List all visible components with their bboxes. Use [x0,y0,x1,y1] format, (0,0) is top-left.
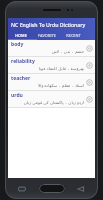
button[interactable]: body [8,40,95,56]
button[interactable]: Recents [18,186,26,192]
button[interactable]: Add reliability to favorites [86,62,93,69]
staticText: urdu [11,92,23,99]
button[interactable]: HOME [8,30,34,40]
button[interactable]: reliability [8,57,95,73]
button[interactable]: Back [77,186,85,192]
staticText: body [11,41,24,48]
staticText: teacher [11,75,31,82]
staticText: NC English To Urdu Dictionary [11,21,86,28]
staticText: RECENT [66,33,81,38]
staticText: بھروسہ ۔ قابل اعتماد ہونا [11,66,84,72]
button[interactable]: Home [39,184,65,193]
button[interactable]: urdu [8,91,95,107]
button[interactable]: Add body to favorites [86,45,93,52]
button[interactable]: Add teacher to favorites [86,79,93,86]
staticText: جسم ۔ بدن ۔ لاش [11,49,84,55]
button[interactable]: teacher [8,74,95,90]
staticText: HOME [15,33,27,38]
button[interactable]: Add urdu to favorites [86,96,93,103]
staticText: FAVORITE [38,33,56,38]
button[interactable]: FAVORITE [34,30,60,40]
button[interactable]: RECENT [60,30,86,40]
staticText: اردو زبان ۔ پاکستان کی قومی زبان [11,100,84,106]
staticText: استاد ۔ معلم ۔ سکھانے والا [11,83,84,89]
staticText: reliability [11,58,35,65]
